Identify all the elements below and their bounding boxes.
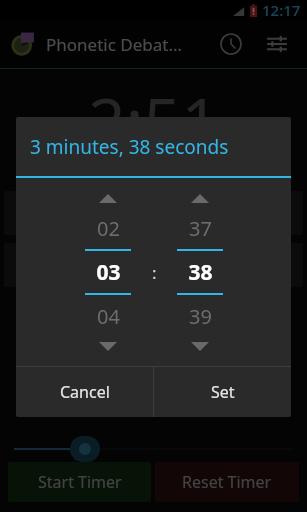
staticText: Cancel [60,381,110,403]
staticText: 37 [189,215,212,242]
button[interactable]: Rewind [4,243,22,287]
button[interactable]: Cancel [16,367,153,417]
staticText: Start Timer [38,471,122,493]
button[interactable]: Next [285,191,303,235]
staticText: 04 [97,303,120,330]
button[interactable]: Set [154,367,291,417]
staticText: 12:17 [262,0,301,20]
button[interactable]: Forward [285,243,303,287]
button[interactable]: Increment [78,185,138,211]
staticText: 02 [97,215,120,242]
staticText: 03 [96,258,121,287]
button[interactable]: 03 [78,251,138,293]
staticText: Set [211,381,235,403]
button[interactable]: History [211,24,251,64]
button[interactable]: Decrement [78,333,138,359]
button[interactable]: Increment [170,185,230,211]
staticText: : [152,261,157,284]
staticText: 39 [189,303,212,330]
staticText: Phonetic Debat… [46,33,211,56]
staticText: 2:51 [88,75,219,165]
button[interactable]: Previous [4,191,22,235]
staticText: 38 [188,258,213,287]
button[interactable]: Settings [257,24,297,64]
button[interactable]: Decrement [170,333,230,359]
button[interactable]: 38 [170,251,230,293]
button[interactable]: Seek [70,436,100,462]
button[interactable]: Start Timer [8,462,151,502]
button[interactable]: Reset Timer [155,462,299,502]
staticText: Reset Timer [182,471,272,493]
staticText: 3 minutes, 38 seconds [30,134,229,160]
